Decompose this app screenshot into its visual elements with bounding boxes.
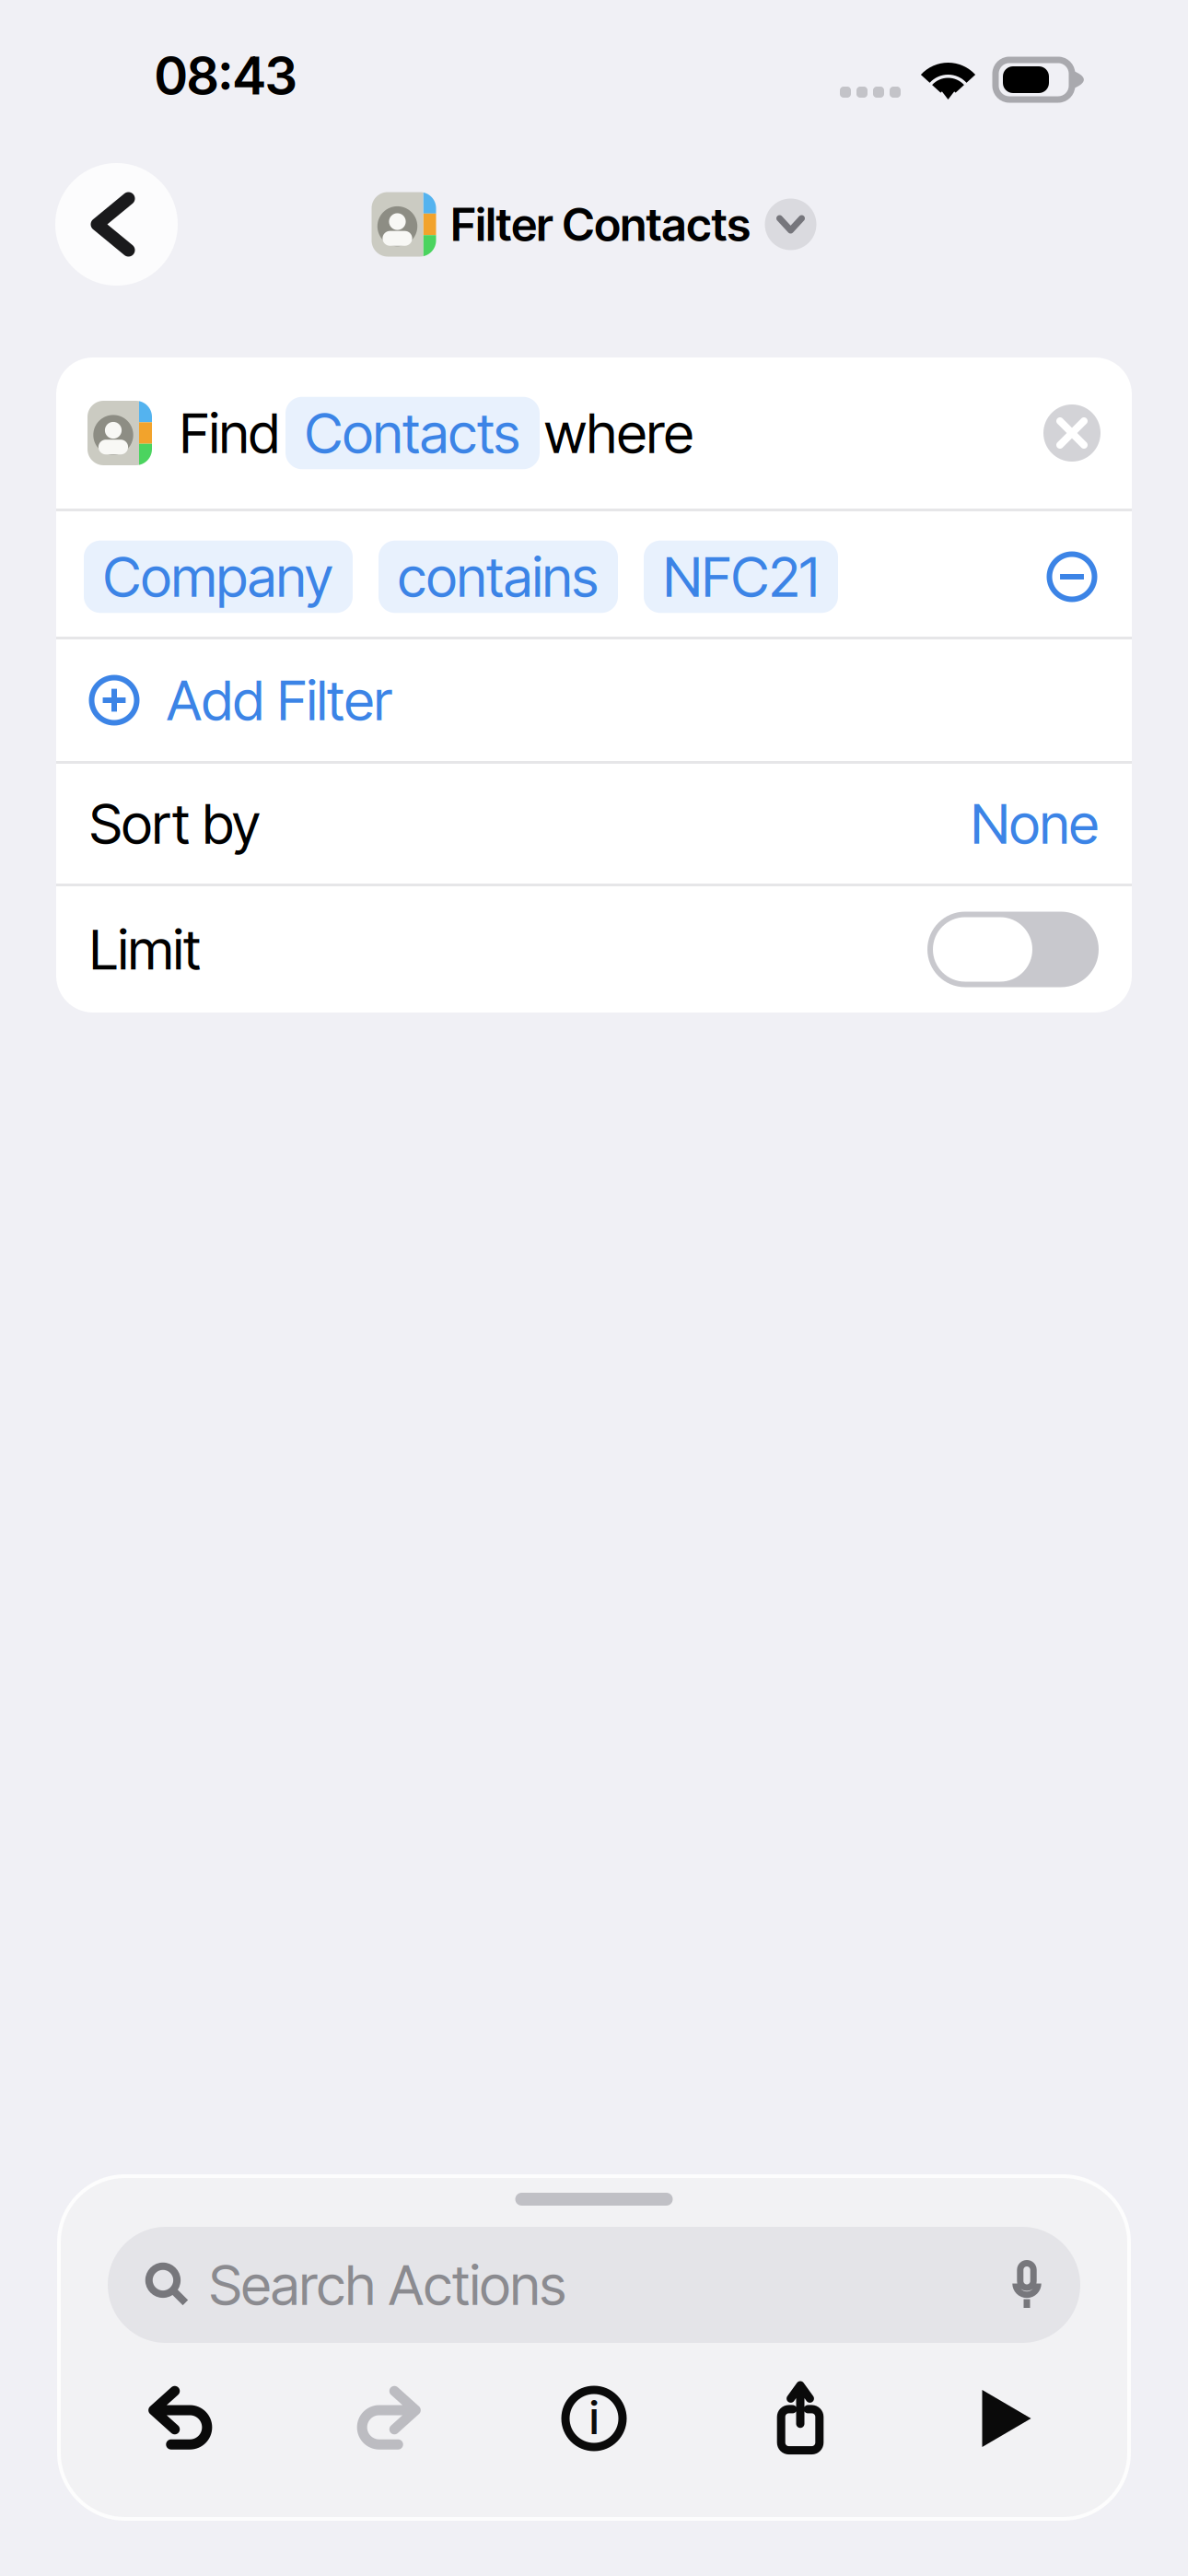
staticText: Company	[103, 543, 333, 610]
button[interactable]: Back	[55, 163, 178, 286]
button[interactable]: Run	[903, 2361, 1110, 2476]
staticText: i	[589, 2390, 599, 2445]
staticText: where	[544, 400, 693, 466]
button[interactable]: Action options	[765, 199, 816, 250]
button[interactable]: Info	[491, 2361, 697, 2476]
button[interactable]: Sort by	[56, 764, 1132, 884]
staticText: None	[971, 790, 1099, 857]
button[interactable]: Add Filter	[56, 639, 1132, 761]
staticText: Limit	[89, 916, 201, 983]
staticText: Contacts	[305, 400, 520, 466]
staticText: Add Filter	[167, 667, 391, 734]
button[interactable]: Contacts	[285, 397, 540, 469]
staticText: Find	[180, 400, 280, 466]
button[interactable]: Share	[697, 2361, 903, 2476]
button[interactable]: Delete action	[1043, 404, 1101, 462]
staticText: Sort by	[89, 790, 261, 857]
button[interactable]: Undo	[78, 2361, 285, 2476]
button[interactable]: contains	[379, 541, 618, 613]
staticText: contains	[398, 543, 599, 610]
button[interactable]: Redo	[285, 2361, 491, 2476]
button[interactable]: Limit toggle	[927, 912, 1099, 987]
staticText: NFC21	[663, 543, 819, 610]
button[interactable]: Company	[84, 541, 353, 613]
staticText: Filter Contacts	[451, 197, 750, 252]
staticText: 08:43	[155, 44, 297, 107]
button[interactable]: NFC21	[644, 541, 838, 613]
button[interactable]: Remove filter	[1040, 544, 1104, 609]
staticText: Search Actions	[209, 2251, 566, 2318]
